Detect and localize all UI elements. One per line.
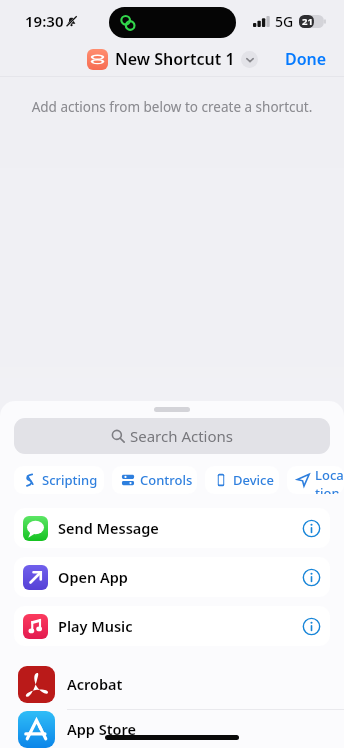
staticText: Controls	[140, 471, 193, 489]
button[interactable]: About Play Music	[302, 617, 321, 636]
staticText: Play Music	[58, 616, 302, 636]
staticText: Scripting	[42, 471, 98, 489]
staticText: 21	[302, 15, 313, 28]
button[interactable]: Acrobat	[0, 659, 344, 709]
button[interactable]: Device	[205, 466, 279, 494]
button[interactable]: Controls	[112, 466, 197, 494]
button[interactable]: New Shortcut 1	[83, 45, 262, 73]
staticText: Acrobat	[67, 674, 123, 694]
staticText: Send Message	[58, 518, 302, 538]
button[interactable]: Scripting	[14, 466, 104, 494]
staticText: New Shortcut 1	[115, 48, 235, 70]
staticText: 19:30	[25, 11, 64, 31]
button[interactable]: Done	[268, 42, 344, 76]
button[interactable]: Play Music	[14, 606, 330, 646]
staticText: 5G	[275, 12, 294, 31]
button[interactable]: Location	[287, 466, 344, 494]
staticText: Location	[315, 466, 344, 494]
staticText: Device	[233, 471, 274, 489]
other: Shortcut options	[241, 51, 258, 68]
staticText: Done	[285, 48, 327, 70]
staticText: App Store	[67, 719, 136, 739]
button[interactable]: Send Message	[14, 508, 330, 548]
button[interactable]: About Open App	[302, 568, 321, 587]
staticText: Add actions from below to create a short…	[0, 98, 344, 116]
button[interactable]: About Send Message	[302, 519, 321, 538]
button[interactable]: Open App	[14, 557, 330, 597]
button[interactable]: Search Actions	[14, 418, 330, 454]
staticText: Search Actions	[130, 426, 233, 446]
staticText: Open App	[58, 567, 302, 587]
button[interactable]: App Store	[0, 710, 344, 748]
